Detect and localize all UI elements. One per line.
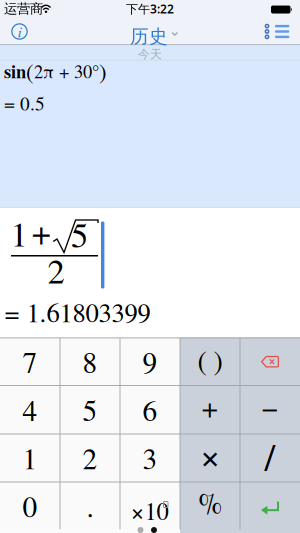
button[interactable]: %: [180, 482, 240, 530]
button[interactable]: ×10ⁿ: [120, 482, 180, 530]
staticText: 8: [82, 342, 97, 381]
button[interactable]: +: [180, 385, 240, 434]
button[interactable]: 5: [60, 385, 120, 434]
staticText: 5: [82, 390, 97, 429]
staticText: 4: [22, 390, 37, 429]
button[interactable]: 历史: [130, 25, 178, 48]
staticText: 1: [10, 210, 27, 256]
button[interactable]: 6: [120, 385, 180, 434]
staticText: /: [264, 430, 275, 482]
button[interactable]: 历史列表: [262, 19, 292, 43]
staticText: 今天: [138, 47, 162, 62]
staticText: 历史: [130, 25, 168, 48]
staticText: (: [26, 55, 34, 86]
staticText: 6: [142, 390, 157, 429]
button[interactable]: 4: [0, 385, 60, 434]
button[interactable]: 9: [120, 338, 180, 385]
staticText: 7: [22, 342, 37, 381]
staticText: 下午3:22: [126, 1, 174, 17]
staticText: i: [17, 20, 21, 42]
staticText: +: [31, 208, 51, 254]
button[interactable]: /: [240, 434, 300, 482]
staticText: ( ): [197, 341, 222, 378]
button[interactable]: 1: [0, 434, 60, 482]
staticText: 0: [22, 486, 37, 526]
staticText: 9: [142, 342, 157, 381]
button[interactable]: .: [60, 482, 120, 530]
button[interactable]: −: [240, 385, 300, 434]
button[interactable]: 0: [0, 482, 60, 530]
staticText: sin: [4, 58, 26, 84]
staticText: %: [198, 483, 222, 522]
button[interactable]: 3: [120, 434, 180, 482]
staticText: 1: [22, 438, 37, 478]
staticText: 2π + 30°: [34, 59, 99, 83]
staticText: = 0.5: [4, 90, 45, 116]
staticText: ×10: [130, 494, 168, 527]
button[interactable]: 2: [60, 434, 120, 482]
staticText: .: [86, 486, 93, 526]
button[interactable]: ( ): [180, 338, 240, 385]
staticText: 2: [47, 247, 64, 293]
button[interactable]: 7: [0, 338, 60, 385]
button[interactable]: 换行: [240, 482, 300, 530]
button[interactable]: 关于: [7, 19, 31, 43]
staticText: +: [201, 387, 218, 426]
staticText: ): [99, 55, 107, 86]
button[interactable]: 删除: [240, 338, 300, 385]
staticText: −: [261, 387, 278, 426]
button[interactable]: ×: [180, 434, 240, 482]
button[interactable]: 8: [60, 338, 120, 385]
staticText: 2: [82, 438, 97, 478]
staticText: = 1.61803399: [4, 294, 150, 330]
staticText: 运营商: [4, 0, 43, 17]
staticText: 5: [71, 211, 88, 257]
staticText: 3: [142, 438, 157, 478]
staticText: ×: [200, 430, 220, 479]
